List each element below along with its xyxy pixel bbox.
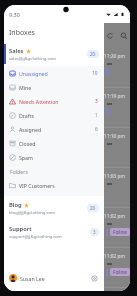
staticText: 11:20 pm [104, 53, 125, 60]
button[interactable]: Search [118, 30, 129, 41]
staticText: blog@jj&gclothing.com [9, 210, 55, 216]
staticText: Assigned [19, 126, 95, 133]
button[interactable]: Unassigned [4, 66, 104, 80]
button[interactable]: Spam [4, 150, 104, 164]
staticText: Sales [9, 47, 24, 55]
staticText: 11:02 pm [104, 213, 125, 220]
staticText: 6 [95, 126, 98, 133]
button[interactable]: Mine [4, 80, 104, 94]
staticText: 11:03 pm [104, 173, 125, 180]
staticText: Drafts [19, 112, 95, 119]
staticText: 11:19 pm [104, 93, 125, 100]
staticText: support@jj&gclothing.com [9, 234, 62, 240]
staticText: 10 [92, 70, 98, 77]
staticText: 1 [95, 112, 98, 119]
button[interactable]: Support [4, 220, 104, 244]
staticText: Follow [113, 229, 127, 235]
button[interactable]: Refresh [104, 30, 115, 41]
button[interactable]: 11:20 pm [104, 48, 130, 88]
staticText: Unassigned [19, 70, 92, 77]
staticText: 11:10 pm [104, 133, 125, 140]
staticText: 20 [90, 51, 96, 57]
staticText: Susan Lee [20, 275, 45, 282]
staticText: VIP Customers [19, 182, 98, 189]
staticText: Closed [19, 140, 98, 147]
staticText: Needs Attention [19, 98, 95, 105]
button[interactable]: Settings [89, 273, 99, 283]
button[interactable]: 11:10 pm [104, 128, 130, 168]
staticText: 9:30 [9, 11, 20, 18]
button[interactable]: Closed [4, 136, 104, 150]
button[interactable]: 11:02 pm [104, 208, 130, 248]
staticText: Inboxes [9, 28, 35, 38]
staticText: sales@jj&gclothing.com [9, 56, 56, 62]
button[interactable]: Susan Lee [9, 265, 99, 291]
staticText: Mine [19, 84, 98, 91]
button[interactable]: Needs Attention [4, 94, 104, 108]
button[interactable]: VIP Customers [4, 178, 104, 192]
button[interactable]: Blog [4, 196, 104, 220]
staticText: Spam [19, 154, 98, 161]
staticText: Support [9, 225, 32, 233]
staticText: 3 [93, 229, 96, 235]
button[interactable]: 11:19 pm [104, 88, 130, 128]
button[interactable]: Sales [4, 42, 104, 66]
staticText: Folders [10, 168, 28, 175]
button[interactable]: 11:02 pm [104, 248, 130, 288]
staticText: Follow [113, 269, 127, 275]
button[interactable]: Assigned [4, 122, 104, 136]
staticText: 3 [95, 98, 98, 105]
staticText: 11:02 pm [104, 253, 125, 260]
staticText: 20 [90, 205, 96, 211]
button[interactable]: 11:03 pm [104, 168, 130, 208]
staticText: Blog [9, 201, 22, 209]
button[interactable]: Drafts [4, 108, 104, 122]
